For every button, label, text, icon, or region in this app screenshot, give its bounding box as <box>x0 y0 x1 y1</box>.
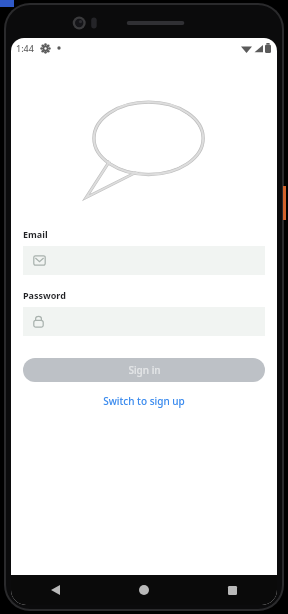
staticText: Email <box>23 228 48 240</box>
button[interactable]: Switch to sign up <box>23 392 265 410</box>
button[interactable]: Home <box>99 575 188 605</box>
button[interactable]: Sign in <box>23 358 265 382</box>
button[interactable]: Back <box>11 575 99 605</box>
staticText: 1:44 <box>16 42 34 54</box>
button[interactable]: Email <box>23 246 265 275</box>
button[interactable]: Password <box>23 307 265 336</box>
staticText: Password <box>23 289 66 301</box>
staticText: Switch to sign up <box>103 394 185 408</box>
button[interactable]: Recent apps <box>188 575 277 605</box>
staticText: Sign in <box>128 363 161 377</box>
